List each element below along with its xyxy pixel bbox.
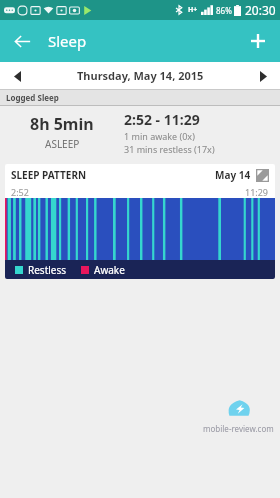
staticText: 2:52: [11, 186, 29, 198]
staticText: SLEEP PATTERN: [11, 168, 87, 182]
button[interactable]: Previous day: [4, 64, 30, 88]
staticText: 11:29: [245, 186, 269, 198]
button[interactable]: Next day: [250, 64, 276, 88]
button[interactable]: Expand: [256, 169, 269, 182]
staticText: 2:52 - 11:29: [124, 110, 200, 129]
staticText: H+: [188, 5, 198, 15]
button[interactable]: 8h 5min: [0, 106, 280, 158]
staticText: Restless: [28, 263, 67, 277]
staticText: 20:30: [245, 2, 276, 18]
staticText: Awake: [94, 263, 125, 277]
button[interactable]: SLEEP PATTERN: [5, 164, 275, 279]
staticText: mobile-review.com: [203, 423, 274, 434]
staticText: 31 mins restless (17x): [124, 143, 215, 155]
staticText: Sleep: [48, 31, 87, 51]
staticText: Logged Sleep: [6, 92, 59, 103]
staticText: 8h 5min: [30, 113, 94, 135]
staticText: ASLEEP: [45, 137, 80, 151]
staticText: 86%: [216, 5, 232, 16]
button[interactable]: Add: [242, 25, 274, 57]
button[interactable]: Back: [6, 25, 38, 57]
staticText: 1 min awake (0x): [124, 130, 195, 142]
staticText: Thursday, May 14, 2015: [77, 68, 204, 83]
staticText: May 14: [215, 168, 251, 182]
